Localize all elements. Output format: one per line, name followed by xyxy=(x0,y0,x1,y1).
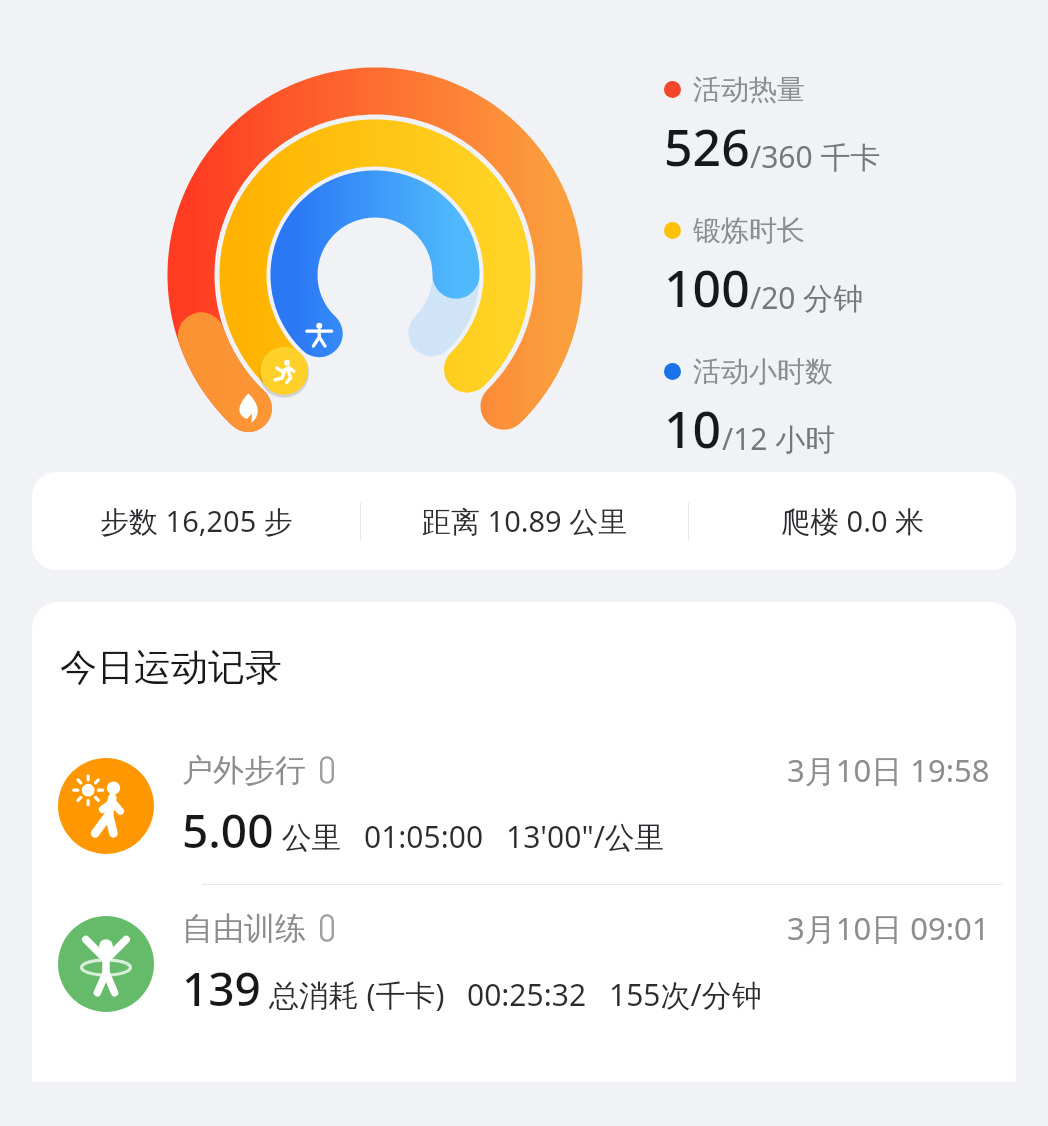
staticText: 139 xyxy=(182,957,261,1020)
staticText: 活动热量 xyxy=(693,72,805,107)
staticText: 155次/分钟 xyxy=(609,974,762,1015)
staticText: 总消耗 (千卡) xyxy=(261,974,445,1015)
staticText: 13'00"/公里 xyxy=(506,816,665,857)
staticText: 526 xyxy=(664,113,750,181)
staticText: /12 小时 xyxy=(722,418,836,459)
button[interactable]: Outdoor walk xyxy=(32,727,1016,884)
staticText: 5.00 xyxy=(182,799,274,862)
staticText: 100 xyxy=(664,254,750,322)
other: Free training xyxy=(58,916,154,1012)
staticText: 爬楼 0.0 米 xyxy=(781,501,925,541)
button[interactable]: Free training xyxy=(32,885,1016,1042)
staticText: 自由训练 xyxy=(182,909,306,948)
staticText: 3月10日 09:01 xyxy=(787,907,990,949)
staticText: 公里 xyxy=(274,816,342,857)
staticText: 01:05:00 xyxy=(364,816,484,857)
staticText: 步数 16,205 步 xyxy=(100,501,293,541)
staticText: /20 分钟 xyxy=(750,277,864,318)
staticText: 00:25:32 xyxy=(467,974,587,1015)
button[interactable]: 步数 16,205 步 xyxy=(32,472,1016,570)
staticText: /360 千卡 xyxy=(750,136,881,177)
staticText: 今日运动记录 xyxy=(60,644,282,691)
button[interactable]: 活动热量 xyxy=(664,72,881,181)
staticText: 10 xyxy=(664,395,722,463)
button[interactable]: 活动小时数 xyxy=(664,354,836,463)
staticText: 3月10日 19:58 xyxy=(787,749,990,791)
staticText: 户外步行 xyxy=(182,751,306,790)
button[interactable]: 锻炼时长 xyxy=(664,213,864,322)
other: Outdoor walk xyxy=(58,758,154,854)
staticText: 距离 10.89 公里 xyxy=(422,501,628,541)
staticText: 锻炼时长 xyxy=(693,213,805,248)
staticText: 活动小时数 xyxy=(693,354,833,389)
